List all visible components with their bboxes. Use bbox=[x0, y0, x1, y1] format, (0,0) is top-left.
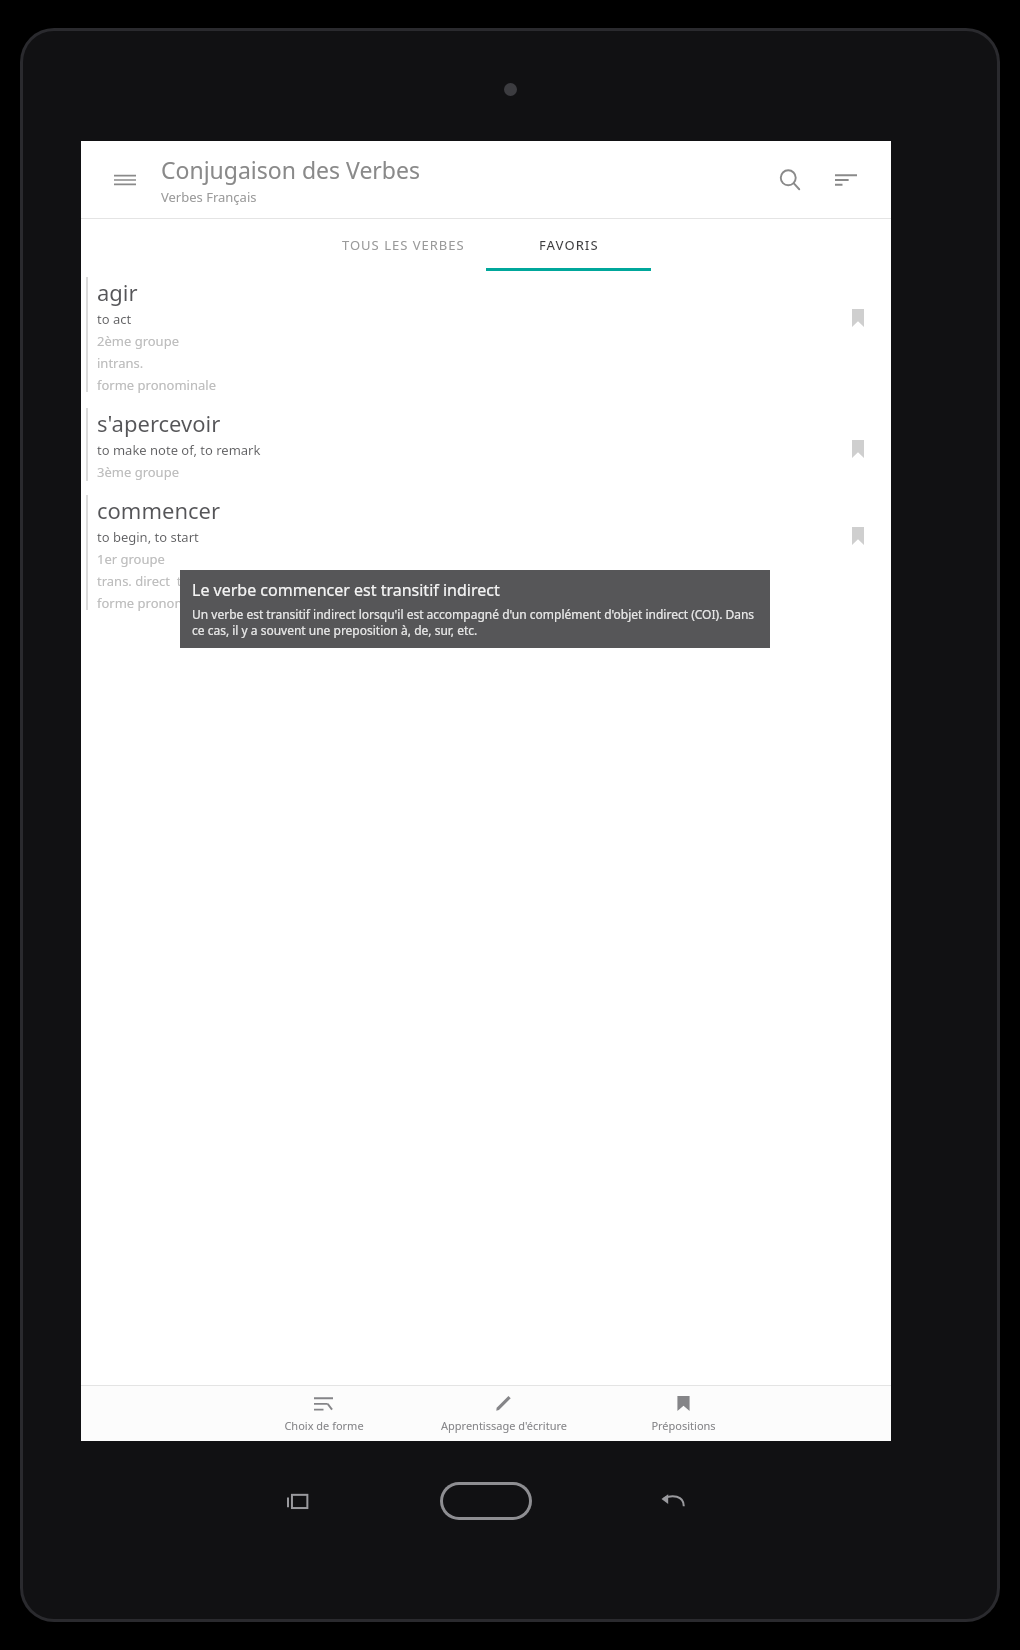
button[interactable]: Bookmark s'apercevoir bbox=[841, 432, 875, 466]
staticText: to make note of, to remark bbox=[97, 441, 261, 459]
staticText: 2ème groupe bbox=[97, 332, 179, 350]
staticText: Conjugaison des Verbes bbox=[161, 154, 420, 185]
button[interactable]: TOUS LES VERBES bbox=[321, 219, 486, 271]
button[interactable]: s'apercevoir bbox=[81, 402, 891, 489]
button[interactable]: Back bbox=[644, 1472, 702, 1530]
staticText: Le verbe commencer est transitif indirec… bbox=[192, 579, 500, 601]
staticText: s'apercevoir bbox=[97, 408, 221, 438]
staticText: 3ème groupe bbox=[97, 463, 179, 481]
button[interactable]: commencer bbox=[81, 489, 891, 620]
button[interactable]: Search bbox=[767, 157, 813, 203]
button[interactable]: Menu bbox=[103, 158, 147, 202]
staticText: agir bbox=[97, 277, 138, 307]
staticText: commencer bbox=[97, 495, 221, 525]
staticText: forme pronominale bbox=[97, 376, 216, 394]
staticText: to act bbox=[97, 310, 132, 328]
button[interactable]: Prépositions bbox=[596, 1386, 771, 1441]
staticText: Choix de forme bbox=[284, 1418, 364, 1433]
staticText: Un verbe est transitif indirect lorsqu'i… bbox=[192, 606, 758, 639]
button[interactable]: Sort bbox=[823, 157, 869, 203]
button[interactable]: Apprentissage d'écriture bbox=[411, 1386, 596, 1441]
staticText: Prépositions bbox=[651, 1418, 716, 1433]
button[interactable]: FAVORIS bbox=[486, 219, 651, 271]
staticText: 1er groupe bbox=[97, 550, 165, 568]
staticText: intrans. bbox=[97, 354, 144, 372]
button[interactable]: Choix de forme bbox=[236, 1386, 411, 1441]
staticText: FAVORIS bbox=[539, 236, 599, 254]
button[interactable]: agir bbox=[81, 271, 891, 402]
button[interactable]: Home bbox=[438, 1480, 534, 1522]
button[interactable]: Bookmark commencer bbox=[841, 519, 875, 553]
button[interactable]: Bookmark agir bbox=[841, 301, 875, 335]
staticText: Verbes Français bbox=[161, 188, 257, 206]
staticText: Apprentissage d'écriture bbox=[441, 1418, 567, 1433]
staticText: TOUS LES VERBES bbox=[342, 236, 465, 254]
staticText: forme pronominale bbox=[97, 594, 216, 612]
staticText: trans. direct trans. indir. intrans. bbox=[97, 572, 298, 590]
staticText: to begin, to start bbox=[97, 528, 199, 546]
button[interactable]: Recents bbox=[270, 1472, 328, 1530]
